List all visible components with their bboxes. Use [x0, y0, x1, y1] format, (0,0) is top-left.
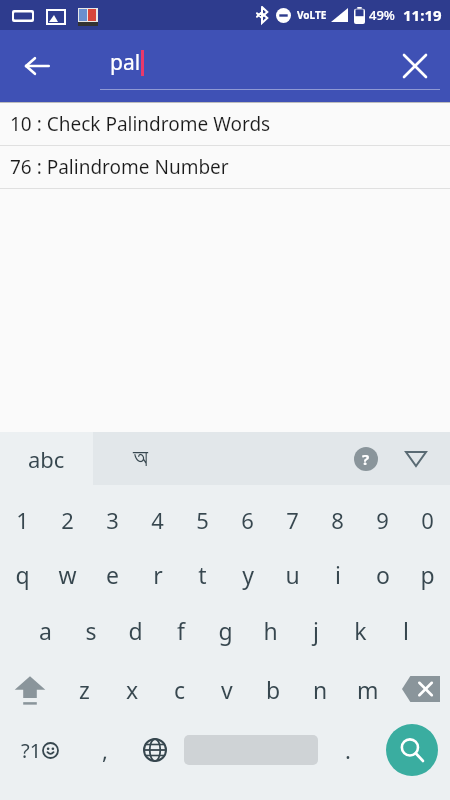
staticText: f	[177, 615, 185, 646]
button[interactable]: 6	[225, 493, 270, 547]
button[interactable]: c	[156, 659, 203, 719]
button[interactable]: অ	[100, 432, 180, 485]
staticText: g	[218, 615, 233, 646]
staticText: pal	[110, 48, 141, 77]
button[interactable]: p	[405, 547, 450, 601]
staticText: 76 : Palindrome Number	[10, 154, 229, 180]
button[interactable]: b	[250, 659, 297, 719]
button[interactable]: f	[158, 601, 203, 659]
button[interactable]: n	[297, 659, 344, 719]
staticText: 3	[106, 505, 119, 535]
staticText: l	[403, 615, 409, 646]
staticText: z	[79, 674, 90, 705]
button[interactable]: 7	[270, 493, 315, 547]
button[interactable]: w	[45, 547, 90, 601]
staticText: 49%	[369, 6, 395, 24]
staticText: m	[357, 674, 379, 705]
button[interactable]: 0	[405, 493, 450, 547]
button[interactable]: .	[322, 719, 374, 781]
button[interactable]: Back	[14, 43, 60, 89]
staticText: r	[153, 559, 163, 590]
button[interactable]: z	[60, 659, 108, 719]
staticText: 9	[376, 505, 389, 535]
button[interactable]: Clear	[392, 43, 438, 89]
staticText: h	[263, 615, 278, 646]
staticText: k	[354, 615, 367, 646]
button[interactable]: abc	[0, 432, 93, 485]
staticText: v	[221, 674, 233, 705]
staticText: j	[313, 615, 319, 646]
staticText: 10 : Check Palindrome Words	[10, 111, 271, 137]
button[interactable]: d	[113, 601, 158, 659]
staticText: w	[58, 559, 77, 590]
button[interactable]: j	[293, 601, 338, 659]
button[interactable]: Hide keyboard	[394, 437, 438, 481]
staticText: d	[128, 615, 143, 646]
staticText: a	[39, 615, 52, 646]
button[interactable]: a	[22, 601, 68, 659]
staticText: 4	[151, 505, 164, 535]
button[interactable]: y	[225, 547, 270, 601]
button[interactable]: k	[338, 601, 383, 659]
staticText: i	[335, 559, 341, 590]
staticText: p	[420, 559, 435, 590]
staticText: VoLTE	[297, 8, 327, 22]
staticText: ?1	[21, 737, 42, 764]
button[interactable]: 3	[90, 493, 135, 547]
button[interactable]: 10 : Check Palindrome Words	[0, 103, 450, 145]
staticText: 11:19	[403, 5, 442, 25]
staticText: c	[174, 674, 186, 705]
staticText: অ	[133, 447, 148, 471]
button[interactable]: 9	[360, 493, 405, 547]
button[interactable]: o	[360, 547, 405, 601]
staticText: e	[106, 559, 119, 590]
button[interactable]: 1	[0, 493, 45, 547]
button[interactable]: 5	[180, 493, 225, 547]
staticText: y	[242, 559, 254, 590]
staticText: 1	[16, 505, 29, 535]
button[interactable]: Help	[344, 437, 388, 481]
button[interactable]: g	[203, 601, 248, 659]
staticText: t	[198, 559, 207, 590]
button[interactable]: Shift	[0, 659, 60, 719]
staticText: 7	[286, 505, 299, 535]
button[interactable]: r	[135, 547, 180, 601]
staticText: o	[376, 559, 390, 590]
staticText: x	[126, 674, 139, 705]
button[interactable]: h	[248, 601, 293, 659]
button[interactable]: ?1	[0, 719, 80, 781]
staticText: q	[15, 559, 30, 590]
button[interactable]: 8	[315, 493, 360, 547]
button[interactable]: u	[270, 547, 315, 601]
staticText: n	[313, 674, 328, 705]
button[interactable]: s	[68, 601, 113, 659]
button[interactable]: Search	[374, 719, 450, 781]
staticText: abc	[28, 444, 65, 474]
button[interactable]: x	[108, 659, 156, 719]
staticText: s	[85, 615, 97, 646]
button[interactable]: q	[0, 547, 45, 601]
button[interactable]: m	[344, 659, 391, 719]
button[interactable]: 4	[135, 493, 180, 547]
staticText: 0	[421, 505, 434, 535]
button[interactable]: i	[315, 547, 360, 601]
button[interactable]: v	[203, 659, 250, 719]
button[interactable]: 2	[45, 493, 90, 547]
button[interactable]: Change language	[130, 719, 180, 781]
staticText: 2	[61, 505, 74, 535]
staticText: b	[266, 674, 281, 705]
button[interactable]: Backspace	[391, 659, 450, 719]
staticText: u	[285, 559, 300, 590]
staticText: 6	[241, 505, 254, 535]
button[interactable]: l	[383, 601, 428, 659]
staticText: ?	[362, 449, 370, 469]
staticText: 8	[331, 505, 344, 535]
button[interactable]: Space	[180, 719, 322, 781]
staticText: ,	[102, 735, 108, 765]
button[interactable]: t	[180, 547, 225, 601]
button[interactable]: ,	[80, 719, 130, 781]
button[interactable]: e	[90, 547, 135, 601]
button[interactable]: 76 : Palindrome Number	[0, 146, 450, 188]
staticText: .	[345, 735, 351, 765]
staticText: 5	[196, 505, 209, 535]
